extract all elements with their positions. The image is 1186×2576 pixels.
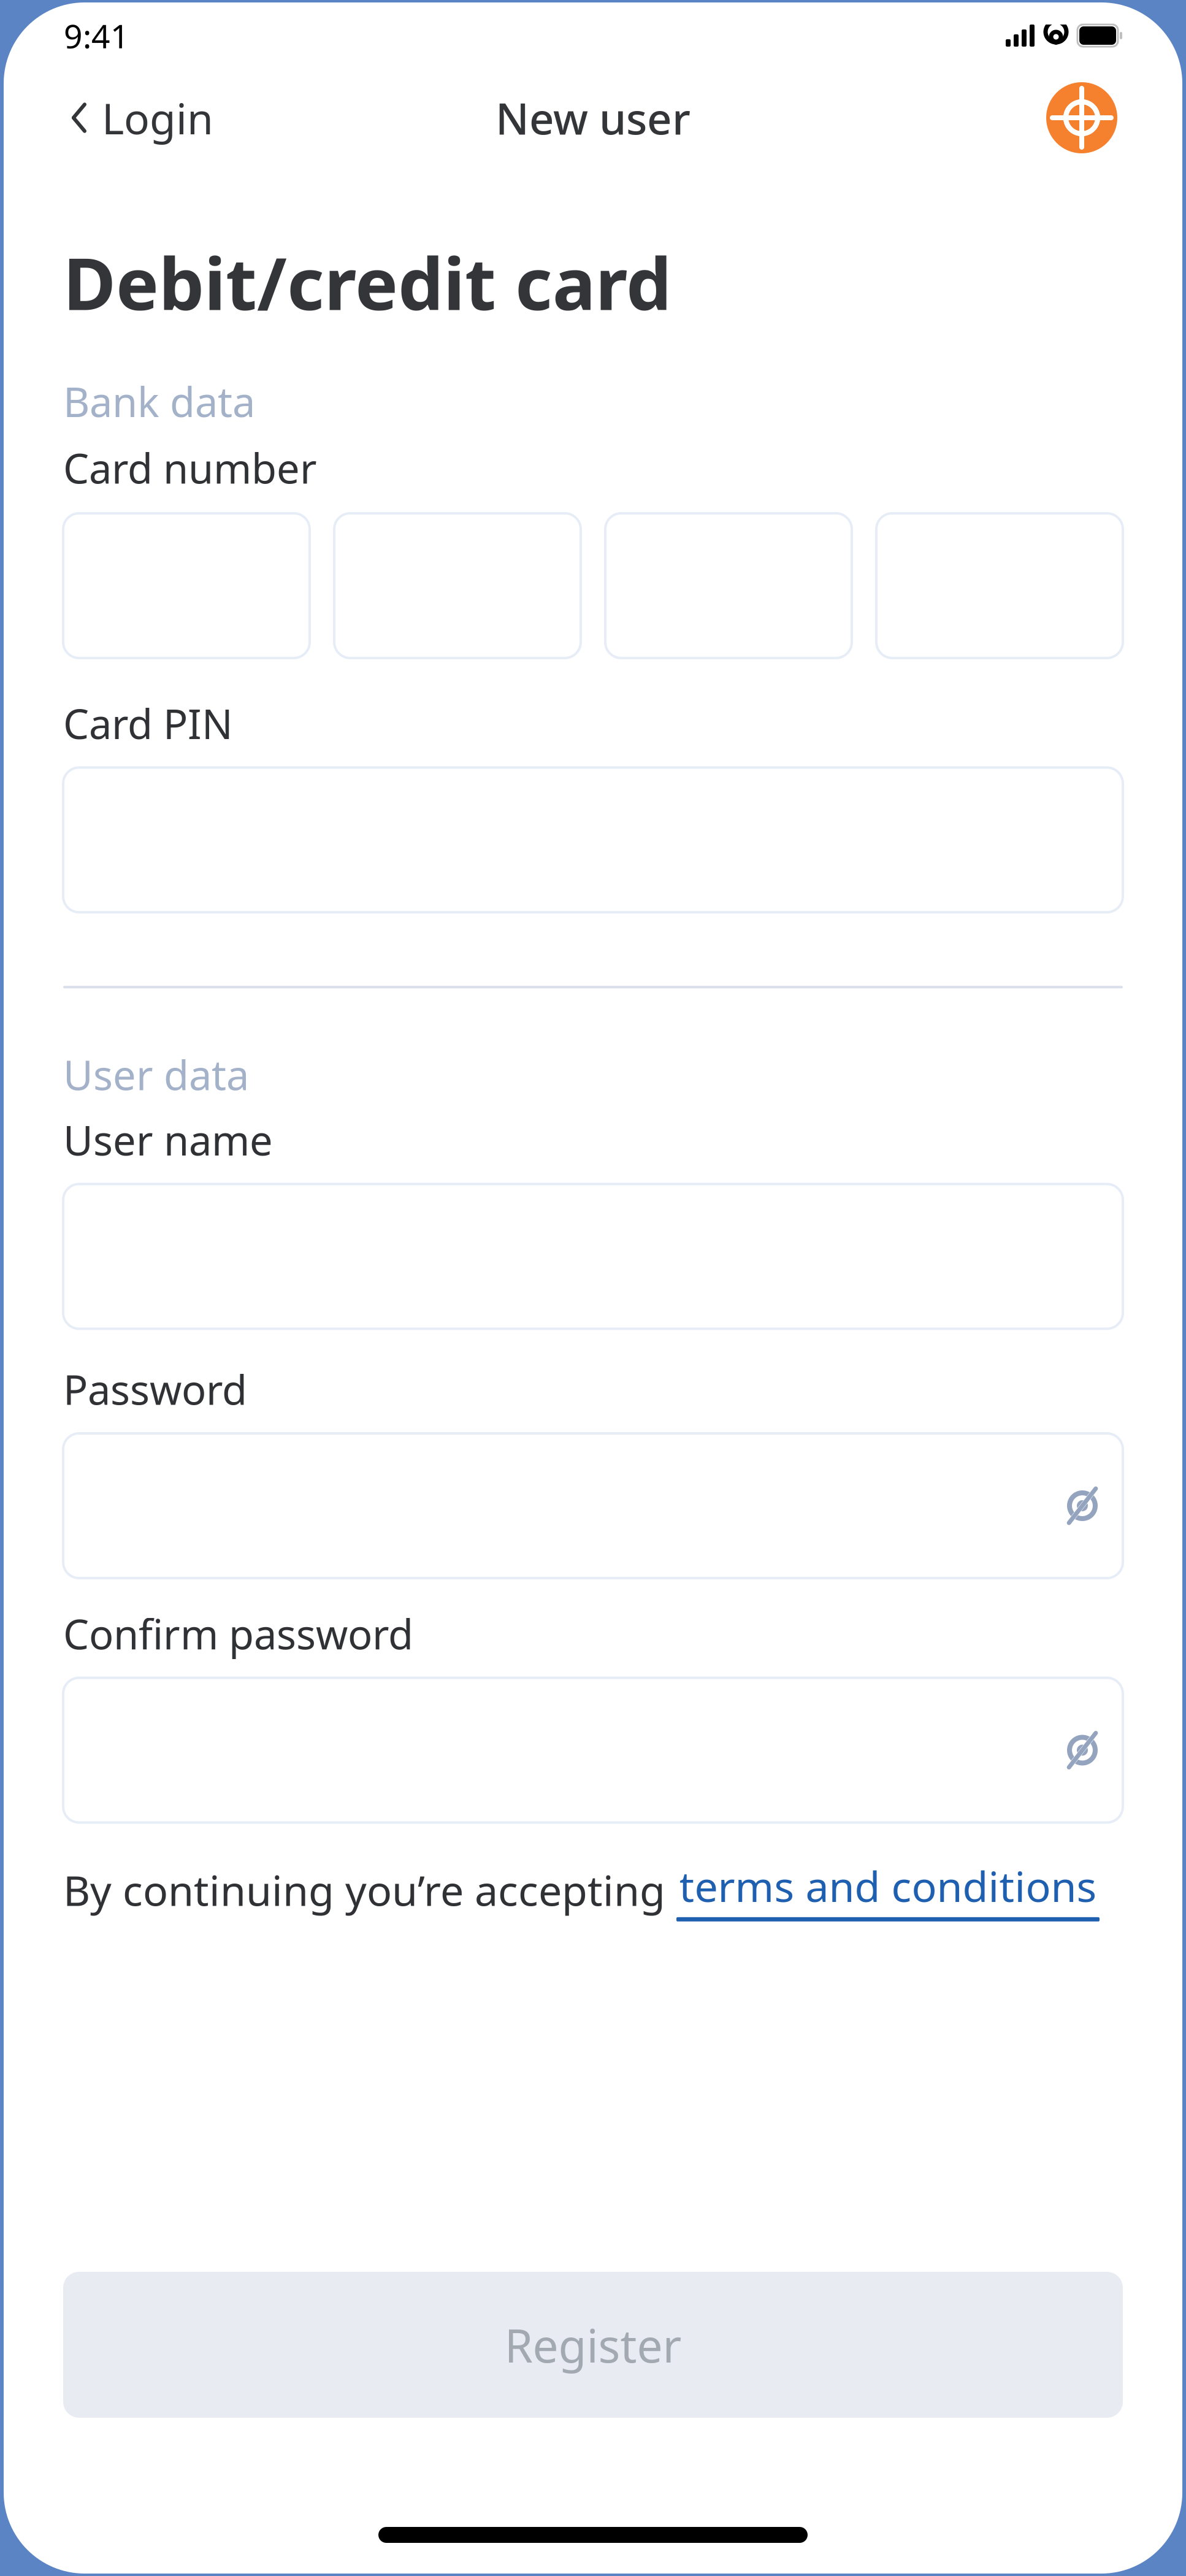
button[interactable]: terms and conditions (676, 1858, 1100, 1921)
staticText: Bank data (63, 374, 255, 428)
staticText: Confirm password (63, 1606, 413, 1661)
button[interactable]: Register (63, 2272, 1123, 2418)
staticText: terms and conditions (679, 1858, 1097, 1913)
button[interactable]: Account (1046, 82, 1117, 153)
staticText: By continuing you’re accepting (63, 1862, 676, 1917)
staticText: Card number (63, 441, 317, 495)
button[interactable]: Show password (1042, 1462, 1123, 1550)
staticText: User name (63, 1113, 273, 1167)
button[interactable]: Show password (1042, 1706, 1123, 1794)
button[interactable]: Login (69, 81, 223, 155)
staticText: User data (63, 1047, 249, 1101)
staticText: Card PIN (63, 696, 233, 750)
staticText: New user (495, 89, 691, 147)
staticText: Register (504, 2314, 682, 2375)
staticText: Debit/credit card (63, 234, 671, 330)
staticText: Login (102, 90, 213, 146)
staticText: 9:41 (64, 14, 129, 57)
staticText: Password (63, 1362, 247, 1416)
